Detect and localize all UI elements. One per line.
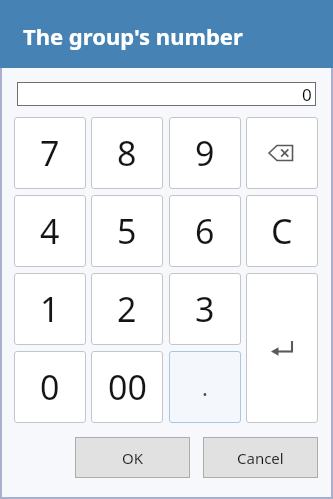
button[interactable]: 00 [91, 351, 163, 423]
button[interactable]: 1 [14, 273, 86, 345]
button[interactable]: 4 [14, 195, 86, 267]
staticText: 5 [117, 208, 137, 254]
staticText: 7 [40, 130, 60, 176]
button[interactable]: Cancel [203, 437, 318, 478]
button[interactable]: OK [75, 437, 190, 478]
button[interactable]: . [169, 351, 241, 423]
button[interactable]: 5 [91, 195, 163, 267]
staticText: 2 [117, 286, 137, 332]
staticText: 1 [40, 286, 60, 332]
button[interactable]: 9 [169, 117, 241, 189]
staticText: OK [122, 448, 144, 468]
staticText: . [202, 372, 208, 402]
button[interactable]: 6 [169, 195, 241, 267]
staticText: 0 [40, 364, 60, 410]
staticText: 9 [195, 130, 215, 176]
button[interactable] [246, 117, 318, 189]
button[interactable]: 3 [169, 273, 241, 345]
staticText: 00 [108, 364, 147, 410]
staticText: 4 [40, 208, 60, 254]
staticText: The group's number [23, 21, 243, 51]
staticText: 0 [302, 83, 312, 106]
button[interactable]: 2 [91, 273, 163, 345]
button[interactable] [246, 273, 318, 423]
button[interactable]: 8 [91, 117, 163, 189]
staticText: 8 [117, 130, 137, 176]
staticText: C [271, 208, 293, 254]
staticText: 3 [195, 286, 215, 332]
staticText: Cancel [237, 448, 284, 468]
button[interactable]: 0 [14, 351, 86, 423]
button[interactable]: C [246, 195, 318, 267]
staticText: 6 [195, 208, 215, 254]
button[interactable]: 7 [14, 117, 86, 189]
